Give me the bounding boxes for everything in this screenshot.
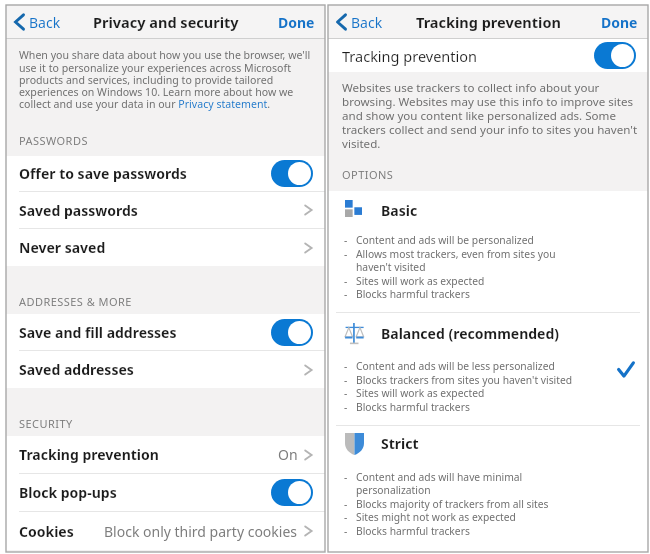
staticText: Sites will work as expected (356, 274, 485, 288)
staticText: OPTIONS (342, 167, 394, 182)
staticText: Back (29, 13, 61, 32)
staticText: PASSWORDS (19, 133, 88, 148)
staticText: SECURITY (19, 416, 73, 431)
staticText: Block pop-ups (19, 483, 117, 502)
staticText: Sites might not work as expected (356, 510, 516, 524)
staticText: personalization (356, 483, 431, 497)
button[interactable]: Saved passwords (6, 192, 325, 228)
staticText: Tracking prevention (416, 12, 561, 32)
staticText: Blocks harmful trackers (356, 400, 470, 414)
button[interactable]: Tracking prevention (6, 436, 325, 473)
staticText: - (344, 274, 356, 288)
staticText: - (344, 470, 356, 484)
button[interactable]: Done (593, 5, 648, 39)
button[interactable]: Tracking prevention (328, 39, 648, 72)
staticText: - (344, 524, 356, 538)
staticText: Offer to save passwords (19, 164, 187, 183)
staticText: Strict (381, 434, 419, 453)
staticText: - (344, 400, 356, 414)
staticText: Basic (381, 201, 418, 220)
button[interactable]: Toggle, on (271, 160, 313, 187)
staticText: - (344, 386, 356, 400)
staticText: Saved addresses (19, 360, 134, 379)
staticText: Allows most trackers, even from sites yo… (356, 247, 556, 261)
button[interactable]: Save and fill addresses (6, 314, 325, 350)
button[interactable]: Back (6, 5, 67, 39)
staticText: - (344, 373, 356, 387)
staticText: ADDRESSES & MORE (19, 294, 132, 309)
staticText: - (344, 233, 356, 247)
staticText: haven't visited (356, 260, 426, 274)
button[interactable]: Strict (328, 426, 648, 552)
staticText: Never saved (19, 238, 106, 257)
button[interactable]: Toggle, on (271, 479, 313, 506)
staticText: Blocks trackers from sites you haven't v… (356, 373, 573, 387)
button[interactable]: Never saved (6, 229, 325, 266)
button[interactable]: Basic (328, 191, 648, 313)
staticText: Done (278, 13, 315, 32)
staticText: Balanced (recommended) (381, 324, 560, 343)
staticText: Blocks harmful trackers (356, 524, 470, 538)
button[interactable]: Toggle, on (271, 319, 313, 346)
staticText: Saved passwords (19, 201, 138, 220)
staticText: - (344, 510, 356, 524)
staticText: Blocks harmful trackers (356, 287, 470, 301)
button[interactable]: Back (328, 5, 389, 39)
staticText: - (344, 497, 356, 511)
staticText: Back (351, 13, 383, 32)
staticText: Privacy and security (93, 12, 239, 32)
staticText: Content and ads will be personalized (356, 233, 534, 247)
button[interactable]: Offer to save passwords (6, 156, 325, 191)
staticText: - (344, 287, 356, 301)
staticText: On (278, 445, 298, 464)
staticText: - (344, 247, 356, 261)
staticText: Cookies (19, 522, 74, 541)
button[interactable]: Balanced (recommended) (328, 313, 648, 426)
staticText: Blocks majority of trackers from all sit… (356, 497, 549, 511)
staticText: Content and ads will be less personalize… (356, 359, 555, 373)
staticText: When you share data about how you use th… (19, 48, 315, 111)
staticText: Tracking prevention (342, 46, 477, 66)
button[interactable]: Done (270, 5, 325, 39)
staticText: Content and ads will have minimal (356, 470, 523, 484)
staticText: Block only third party cookies (104, 522, 298, 541)
button[interactable]: Cookies (6, 512, 325, 550)
staticText: Tracking prevention (19, 445, 159, 464)
button[interactable]: Block pop-ups (6, 474, 325, 511)
button[interactable]: Toggle, on (594, 42, 636, 69)
button[interactable]: Saved addresses (6, 351, 325, 388)
staticText: Websites use trackers to collect info ab… (342, 80, 642, 151)
staticText: - (344, 359, 356, 373)
staticText: Sites will work as expected (356, 386, 485, 400)
staticText: Done (601, 13, 638, 32)
staticText: Save and fill addresses (19, 323, 177, 342)
